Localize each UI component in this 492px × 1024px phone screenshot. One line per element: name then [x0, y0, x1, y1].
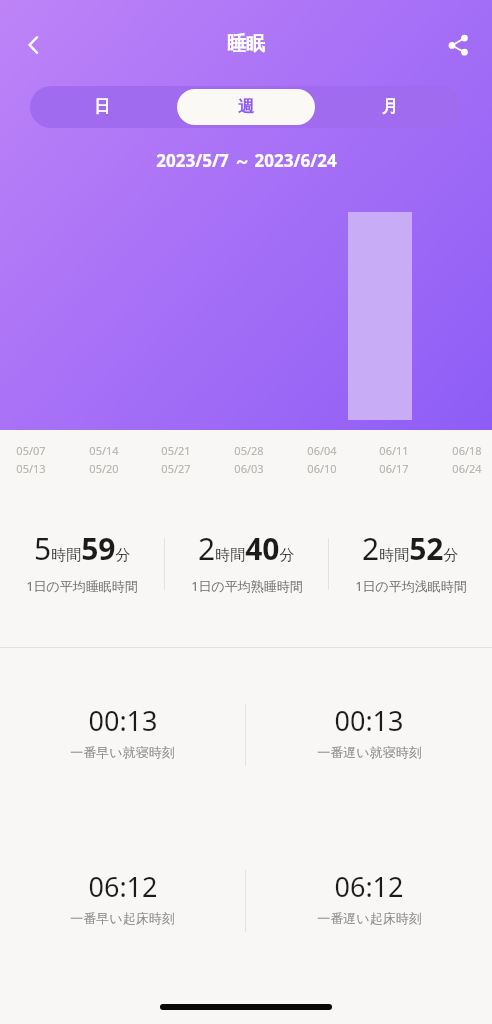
button[interactable]: 月 [321, 89, 459, 125]
staticText: 2時間40分 [198, 528, 295, 569]
staticText: 一番遅い就寝時刻 [317, 744, 422, 760]
staticText: 1日の平均熟睡時間 [191, 577, 303, 595]
staticText: 05/13 [16, 461, 46, 476]
staticText: 一番遅い起床時刻 [317, 910, 422, 926]
button[interactable]: 日 [33, 89, 171, 125]
staticText: 06:12 [88, 868, 158, 905]
button[interactable]: Back [10, 21, 58, 69]
staticText: 00:13 [334, 702, 404, 739]
staticText: 週 [238, 97, 254, 117]
staticText: 06/11 [379, 443, 409, 458]
staticText: 一番早い就寝時刻 [70, 744, 175, 760]
staticText: 05/28 [234, 443, 264, 458]
staticText: 05/14 [89, 443, 119, 458]
staticText: 1日の平均浅眠時間 [355, 577, 467, 595]
staticText: 05/27 [161, 461, 191, 476]
staticText: 06/17 [379, 461, 409, 476]
staticText: 睡眠 [227, 32, 265, 56]
button[interactable]: Share [434, 21, 482, 69]
staticText: 06/24 [452, 461, 482, 476]
staticText: 06/18 [452, 443, 482, 458]
staticText: 05/21 [161, 443, 191, 458]
staticText: 05/20 [89, 461, 119, 476]
staticText: 2023/5/7 ～ 2023/6/24 [156, 149, 337, 172]
staticText: 00:13 [88, 702, 158, 739]
staticText: 06/10 [307, 461, 337, 476]
staticText: 2時間52分 [362, 528, 459, 569]
staticText: 06/03 [234, 461, 264, 476]
button[interactable]: 週 [177, 89, 315, 125]
staticText: 06:12 [334, 868, 404, 905]
staticText: 日 [94, 97, 110, 117]
staticText: 月 [382, 97, 398, 117]
staticText: 1日の平均睡眠時間 [26, 577, 138, 595]
staticText: 06/04 [307, 443, 337, 458]
staticText: 一番早い起床時刻 [70, 910, 175, 926]
staticText: 05/07 [16, 443, 46, 458]
staticText: 5時間59分 [34, 528, 131, 569]
